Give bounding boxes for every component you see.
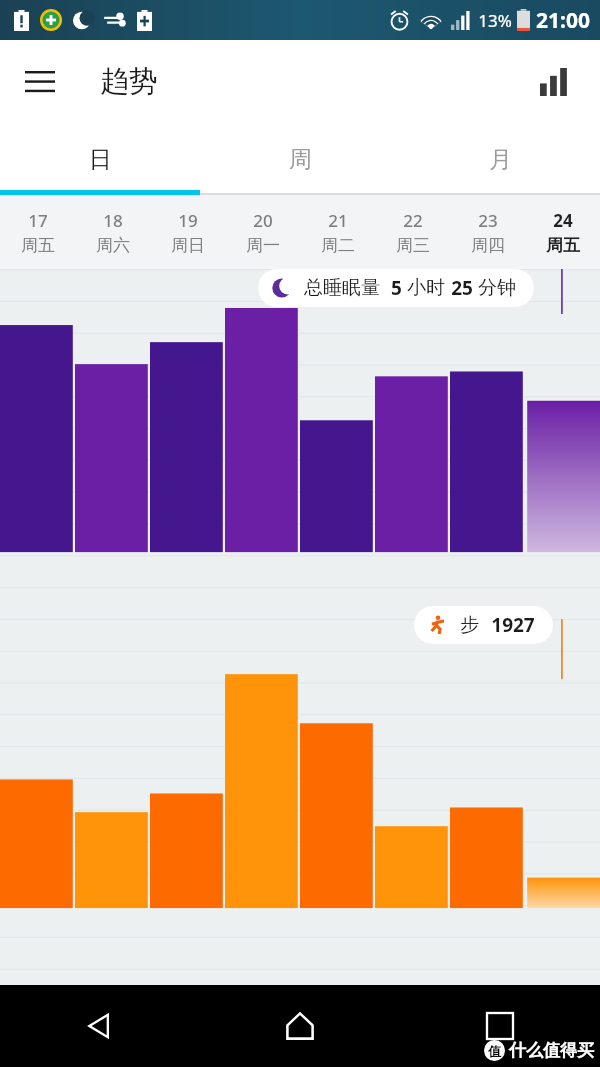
staticText: 月 bbox=[489, 145, 512, 174]
staticText: 21 bbox=[328, 209, 348, 232]
staticText: 趋势 bbox=[100, 63, 158, 100]
button[interactable]: 步 bbox=[414, 606, 553, 644]
staticText: 周二 bbox=[321, 235, 355, 256]
staticText: 17 bbox=[28, 209, 48, 232]
button[interactable]: 17 bbox=[0, 195, 75, 269]
button[interactable]: 总睡眠量 bbox=[258, 269, 534, 307]
button[interactable]: 18 bbox=[75, 195, 150, 269]
staticText: 周四 bbox=[471, 235, 505, 256]
staticText: 值 bbox=[488, 1043, 501, 1059]
button[interactable]: 月 bbox=[400, 123, 600, 195]
button[interactable]: 22 bbox=[375, 195, 450, 269]
staticText: 周五 bbox=[21, 235, 55, 256]
button[interactable]: Recent apps bbox=[400, 985, 600, 1067]
button[interactable]: 23 bbox=[450, 195, 525, 269]
staticText: 18 bbox=[103, 209, 123, 232]
staticText: 周 bbox=[289, 145, 312, 174]
button[interactable]: Menu bbox=[16, 58, 64, 106]
button[interactable]: Home bbox=[200, 985, 400, 1067]
staticText: 什么值得买 bbox=[509, 1040, 594, 1061]
button[interactable]: Chart bbox=[530, 58, 578, 106]
staticText: 步 bbox=[460, 613, 479, 637]
staticText: 小时 bbox=[407, 276, 445, 300]
staticText: 总睡眠量 bbox=[304, 276, 380, 300]
staticText: 周五 bbox=[546, 235, 580, 256]
staticText: 25 bbox=[451, 275, 473, 301]
staticText: 23 bbox=[478, 209, 498, 232]
staticText: 日 bbox=[89, 145, 112, 174]
staticText: 21:00 bbox=[536, 6, 590, 35]
button[interactable]: 19 bbox=[150, 195, 225, 269]
staticText: 分钟 bbox=[478, 276, 516, 300]
button[interactable]: 24 bbox=[525, 195, 600, 269]
button[interactable]: 20 bbox=[225, 195, 300, 269]
staticText: 19 bbox=[178, 209, 198, 232]
staticText: 5 bbox=[391, 275, 402, 301]
staticText: 20 bbox=[253, 209, 273, 232]
button[interactable]: 21 bbox=[300, 195, 375, 269]
staticText: 24 bbox=[553, 209, 573, 232]
button[interactable]: 周 bbox=[200, 123, 400, 195]
staticText: 周日 bbox=[171, 235, 205, 256]
staticText: 周三 bbox=[396, 235, 430, 256]
staticText: 周一 bbox=[246, 235, 280, 256]
staticText: 13% bbox=[478, 9, 512, 32]
staticText: 22 bbox=[403, 209, 423, 232]
button[interactable]: 日 bbox=[0, 123, 200, 195]
staticText: 周六 bbox=[96, 235, 130, 256]
staticText: 1927 bbox=[491, 612, 535, 638]
button[interactable]: Back bbox=[0, 985, 200, 1067]
